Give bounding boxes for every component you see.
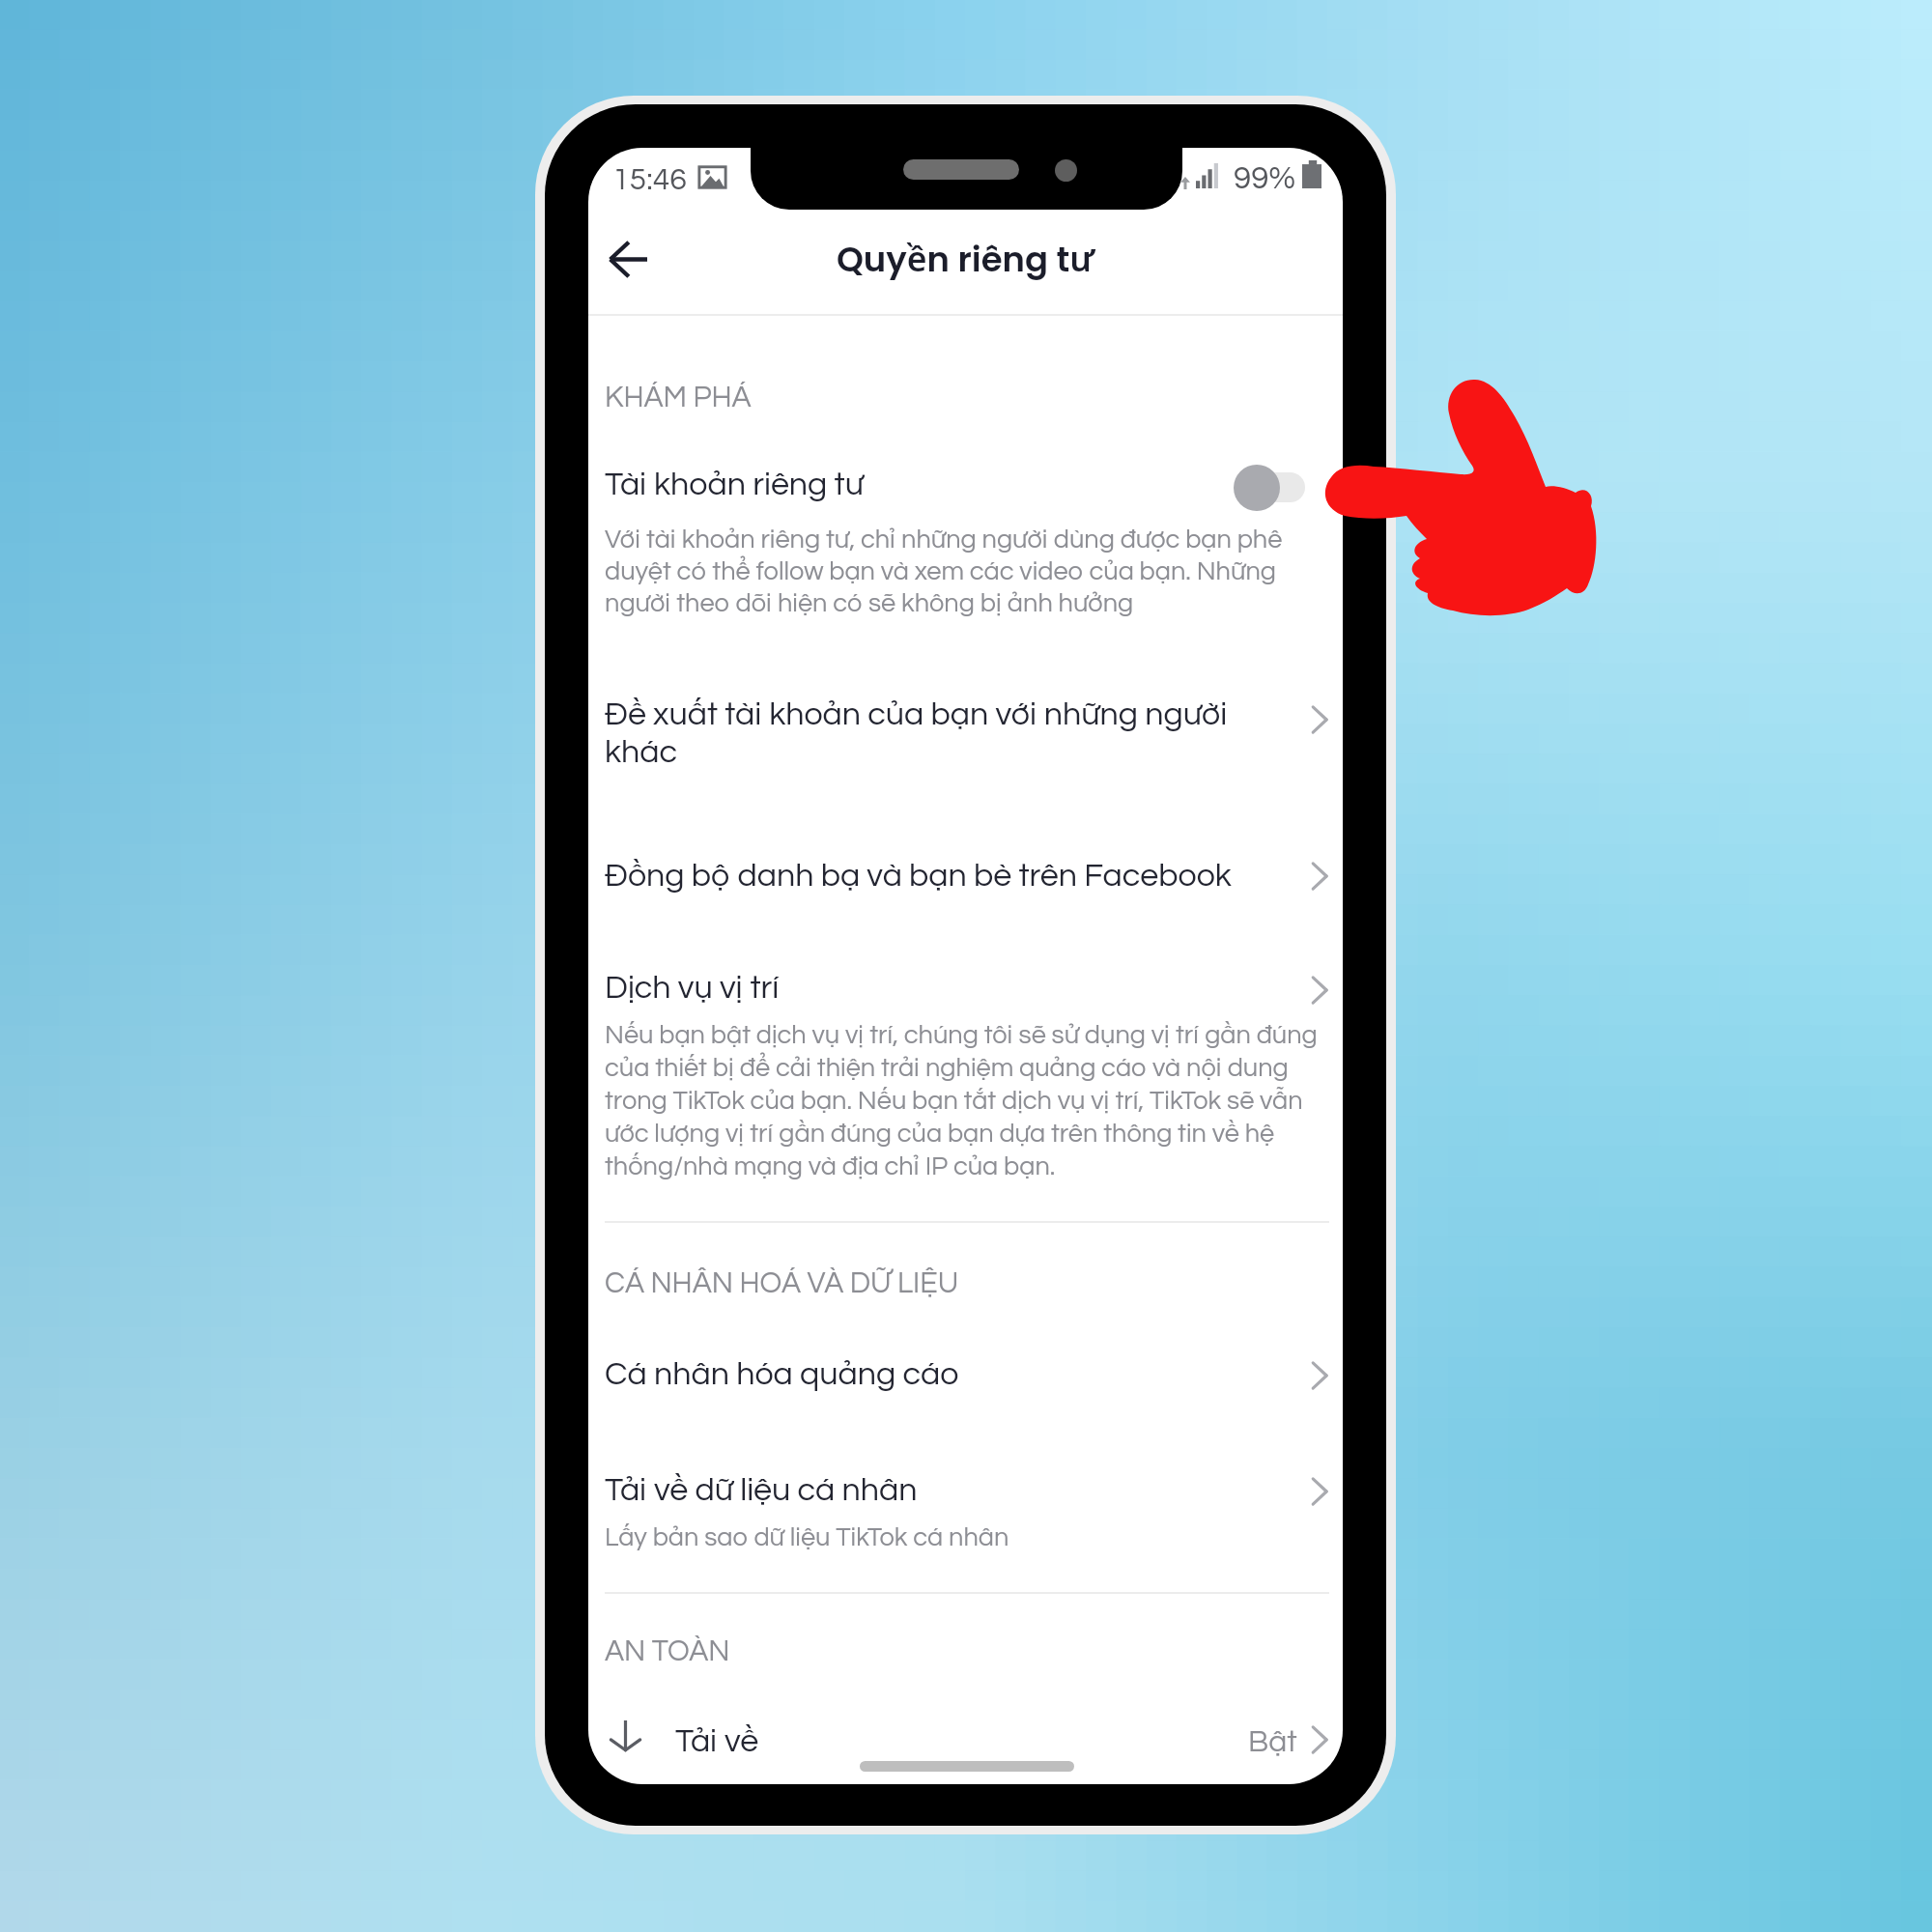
staticText: Tải về dữ liệu cá nhân (605, 1473, 918, 1507)
staticText: CÁ NHÂN HOÁ VÀ DỮ LIỆU (605, 1268, 959, 1298)
button[interactable] (588, 1712, 1343, 1777)
button[interactable]: Back (593, 224, 663, 294)
staticText: Đề xuất tài khoản của bạn với những ngườ… (605, 697, 1262, 769)
staticText: Quyền riêng tư (588, 235, 1343, 283)
button[interactable] (588, 686, 1343, 750)
staticText: Dịch vụ vị trí (605, 971, 780, 1005)
staticText: KHÁM PHÁ (605, 383, 752, 412)
staticText: 15:46 (612, 164, 687, 196)
staticText: Cá nhân hóa quảng cáo (605, 1357, 959, 1391)
button[interactable] (588, 1344, 1343, 1407)
button[interactable] (588, 957, 1343, 1021)
staticText: Nếu bạn bật dịch vụ vị trí, chúng tôi sẽ… (605, 1022, 1333, 1179)
button[interactable]: Tài khoản riêng tư (1234, 457, 1305, 518)
staticText: 99% (1234, 162, 1296, 195)
staticText: Tải về (675, 1724, 759, 1758)
button[interactable] (588, 845, 1343, 909)
staticText: Với tài khoản riêng tư, chỉ những người … (605, 526, 1333, 617)
staticText: Tài khoản riêng tư (605, 468, 864, 501)
staticText: Bật (1248, 1726, 1297, 1758)
staticText: Đồng bộ danh bạ và bạn bè trên Facebook (605, 859, 1232, 893)
staticText: AN TOÀN (605, 1636, 730, 1666)
staticText: Lấy bản sao dữ liệu TikTok cá nhân (605, 1524, 1009, 1551)
button[interactable] (588, 450, 1343, 518)
button[interactable] (588, 1460, 1343, 1523)
